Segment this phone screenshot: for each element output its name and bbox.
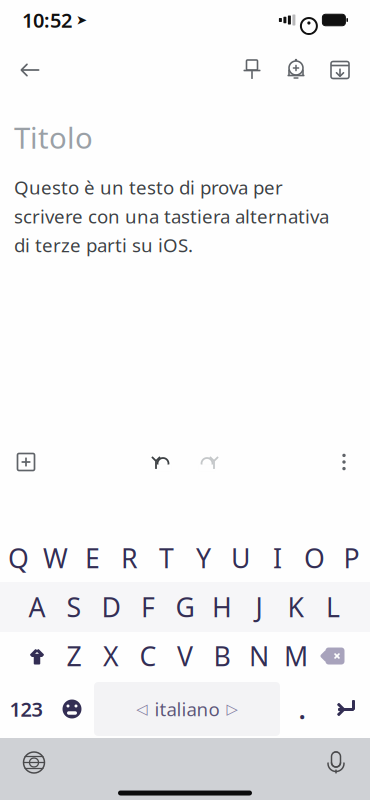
staticText: M <box>284 638 308 674</box>
staticText: Titolo <box>14 118 93 157</box>
staticText: G <box>175 589 194 625</box>
button[interactable]: Pin note <box>230 48 274 92</box>
staticText: R <box>121 540 138 576</box>
button[interactable]: Add item <box>4 440 48 484</box>
staticText: U <box>231 540 250 576</box>
staticText: X <box>103 638 119 674</box>
button[interactable]: . <box>280 682 324 736</box>
staticText: K <box>287 589 304 625</box>
button[interactable]: Back <box>8 48 52 92</box>
button[interactable]: Dictate <box>314 742 358 782</box>
button[interactable]: A <box>18 584 55 630</box>
button[interactable]: E <box>74 535 111 581</box>
button[interactable]: G <box>166 584 203 630</box>
button[interactable]: V <box>166 633 203 679</box>
staticText: 123 <box>9 696 42 722</box>
button[interactable]: 123 <box>2 682 50 736</box>
button[interactable]: Return <box>324 686 368 732</box>
staticText: B <box>213 638 230 674</box>
button[interactable]: I <box>259 535 296 581</box>
button[interactable]: Redo <box>185 440 229 484</box>
staticText: P <box>343 540 359 576</box>
button[interactable]: D <box>92 584 129 630</box>
button[interactable]: N <box>240 633 277 679</box>
button[interactable]: K <box>277 584 314 630</box>
staticText: D <box>101 589 120 625</box>
staticText: Z <box>66 638 81 674</box>
staticText: C <box>139 638 156 674</box>
staticText: F <box>141 589 155 625</box>
staticText: T <box>159 540 174 576</box>
button[interactable]: T <box>148 535 185 581</box>
staticText: Questo è un testo di prova per scrivere … <box>14 175 329 257</box>
staticText: H <box>212 589 232 625</box>
button[interactable]: Z <box>55 633 92 679</box>
staticText: S <box>66 589 81 625</box>
staticText: L <box>326 589 340 625</box>
button[interactable]: S <box>55 584 92 630</box>
staticText: Q <box>8 540 29 576</box>
staticText: italiano <box>154 697 219 721</box>
button[interactable]: B <box>203 633 240 679</box>
button[interactable]: L <box>314 584 351 630</box>
staticText: ▷ <box>226 701 237 717</box>
button[interactable]: U <box>222 535 259 581</box>
button[interactable]: Switch keyboard <box>12 742 56 782</box>
button[interactable]: Q <box>0 535 37 581</box>
button[interactable]: More options <box>322 440 366 484</box>
staticText: V <box>177 638 193 674</box>
button[interactable]: R <box>111 535 148 581</box>
button[interactable]: F <box>129 584 166 630</box>
button[interactable]: Undo <box>141 440 185 484</box>
button[interactable]: W <box>37 535 74 581</box>
staticText: . <box>298 691 305 727</box>
staticText: N <box>249 638 269 674</box>
staticText: 10:52 <box>22 7 72 33</box>
button[interactable]: Emoji <box>50 686 94 732</box>
staticText: ➤ <box>76 12 87 27</box>
staticText: I <box>273 540 282 576</box>
button[interactable]: Add reminder <box>274 48 318 92</box>
button[interactable]: M <box>277 633 314 679</box>
staticText: O <box>304 540 325 576</box>
button[interactable]: Backspace <box>314 633 351 679</box>
button[interactable]: C <box>129 633 166 679</box>
button[interactable]: J <box>240 584 277 630</box>
button[interactable]: H <box>203 584 240 630</box>
button[interactable]: O <box>296 535 333 581</box>
staticText: J <box>255 589 262 625</box>
button[interactable]: P <box>333 535 370 581</box>
button[interactable]: Archive <box>318 48 362 92</box>
staticText: W <box>43 540 68 576</box>
staticText: A <box>28 589 45 625</box>
staticText: E <box>85 540 100 576</box>
button[interactable]: Y <box>185 535 222 581</box>
button[interactable]: X <box>92 633 129 679</box>
staticText: Y <box>196 540 211 576</box>
staticText: ◁ <box>136 701 147 717</box>
button[interactable]: Shift <box>18 633 55 679</box>
button[interactable]: Space <box>94 682 280 736</box>
